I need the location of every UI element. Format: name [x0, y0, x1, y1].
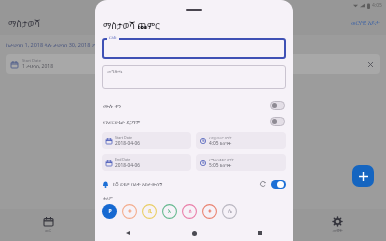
button[interactable]: Clear	[365, 59, 375, 69]
button[interactable]: ወር	[0, 215, 96, 235]
button[interactable]: Back	[122, 227, 134, 239]
staticText: 2018-04-06	[115, 162, 141, 169]
staticText: መቼት	[332, 228, 343, 233]
staticText: ቢ	[148, 208, 152, 215]
staticText: Start Date	[115, 135, 132, 140]
staticText: ርዕስ	[109, 35, 117, 40]
staticText: ማስታወሻ	[8, 17, 41, 29]
button[interactable]: Color ሰ	[181, 203, 198, 220]
button[interactable]: Start Date	[6, 54, 380, 74]
button[interactable]: ወርሃዊ እይታ	[351, 19, 380, 27]
staticText: ማስታወሻ ጨምር	[103, 19, 160, 31]
button[interactable]: Off	[270, 101, 285, 110]
staticText: Start Date	[22, 58, 41, 63]
staticText: ከታህሳስ 1, 2018 ላሉ ታህሳስ 30, 2018 ያሉትን ማ	[6, 41, 113, 48]
button[interactable]: የአየርሁኔታ ደጋገሞ	[95, 113, 293, 129]
button[interactable]: Color አ	[161, 203, 178, 220]
staticText: መግለጫ	[107, 69, 123, 74]
staticText: የአየርሁኔታ ደጋገሞ	[103, 118, 141, 125]
staticText: የመጀመሪያ ሰዓት	[209, 135, 232, 140]
staticText: ቀ	[208, 208, 212, 215]
staticText: ሌ	[228, 208, 232, 215]
button[interactable]	[102, 38, 286, 59]
button[interactable]: መግለጫ	[102, 65, 286, 89]
button[interactable]: End Date	[102, 154, 191, 171]
button[interactable]: የመጀመሪያ ሰዓት	[196, 132, 286, 149]
staticText: 2018-04-06	[115, 140, 141, 147]
button[interactable]: Recents	[254, 227, 266, 239]
staticText: 1 ታህሳስ, 2018	[22, 63, 54, 70]
staticText: ቀ	[128, 208, 132, 215]
button[interactable]: Color ቢ	[141, 203, 158, 220]
staticText: የማጠናቀቂያ ሰዓት	[209, 157, 234, 162]
button[interactable]: Start Date	[102, 132, 191, 149]
staticText: ቀለም	[103, 196, 113, 201]
button[interactable]: ከ5 ደቂቃ በፊት አስታውሰኝ	[102, 179, 286, 189]
staticText: ሰ	[188, 208, 192, 215]
staticText: 4:05	[372, 2, 382, 9]
staticText: P	[108, 208, 112, 215]
staticText: አ	[168, 208, 171, 215]
button[interactable]: On	[271, 180, 286, 189]
staticText: 5:05 ከሰዓት	[209, 162, 232, 169]
button[interactable]: መቼት	[289, 215, 386, 235]
button[interactable]: Home	[188, 227, 200, 239]
button[interactable]: Color ሌ	[221, 203, 238, 220]
button[interactable]: Color ቀ	[201, 203, 218, 220]
staticText: ሙሉ ቀን	[103, 102, 122, 109]
button[interactable]: Color ቀ	[121, 203, 138, 220]
button[interactable]: የማጠናቀቂያ ሰዓት	[196, 154, 286, 171]
button[interactable]: ሙሉ ቀን	[95, 97, 293, 113]
staticText: ወር	[45, 228, 51, 233]
button[interactable]: Color P	[101, 203, 118, 220]
button[interactable]: Repeat	[258, 179, 268, 189]
staticText: 4:05 ከሰዓት	[209, 140, 232, 147]
button[interactable]: Off	[270, 117, 285, 126]
staticText: ከ5 ደቂቃ በፊት አስታውሰኝ	[113, 181, 163, 188]
staticText: End Date	[115, 157, 131, 162]
button[interactable]: Add	[352, 165, 374, 187]
